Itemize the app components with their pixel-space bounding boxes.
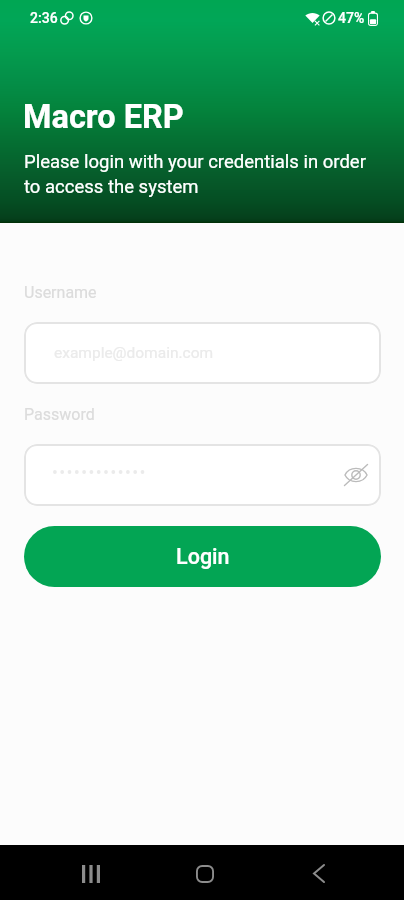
button[interactable]: Show password <box>24 444 381 506</box>
button[interactable]: Back <box>285 853 353 894</box>
staticText: 2:36 <box>30 10 58 26</box>
staticText: example@domain.com <box>54 344 214 362</box>
staticText: Password <box>24 405 95 424</box>
staticText: Username <box>24 283 97 302</box>
button[interactable]: Recent apps <box>57 853 125 894</box>
staticText: Login <box>176 544 230 569</box>
staticText: 47% <box>338 10 365 26</box>
staticText: Macro ERP <box>23 98 184 136</box>
staticText: Please login with your credentials in or… <box>24 151 376 198</box>
button[interactable]: Login <box>24 526 381 587</box>
button[interactable]: example@domain.com <box>24 322 381 384</box>
button[interactable]: Show password <box>341 458 371 492</box>
button[interactable]: Home <box>171 853 239 894</box>
